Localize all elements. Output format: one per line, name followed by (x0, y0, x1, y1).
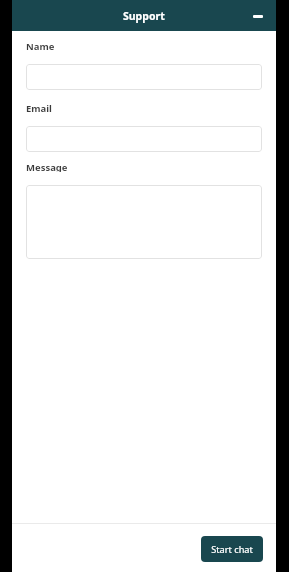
button[interactable]: Name (26, 64, 262, 90)
button[interactable]: Start chat (201, 536, 263, 562)
staticText: Support (123, 9, 165, 23)
button[interactable]: Email (26, 126, 262, 152)
staticText: Message (26, 161, 68, 172)
staticText: Email (26, 102, 52, 113)
staticText: Start chat (211, 543, 253, 556)
button[interactable]: Minimize (248, 6, 268, 26)
staticText: Name (26, 40, 55, 51)
button[interactable]: Message (26, 185, 262, 259)
